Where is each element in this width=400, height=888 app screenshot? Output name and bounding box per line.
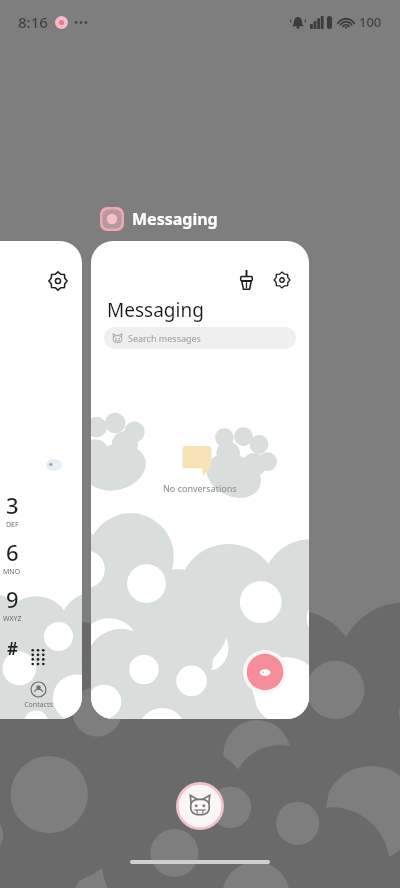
- staticText: 9: [6, 584, 19, 614]
- button[interactable]: Settings: [269, 267, 295, 293]
- staticText: 3: [6, 490, 19, 520]
- staticText: #: [7, 637, 18, 660]
- staticText: No conversations: [163, 482, 237, 494]
- staticText: MNO: [3, 567, 21, 577]
- button[interactable]: Keypad: [26, 645, 50, 669]
- button[interactable]: #: [0, 631, 82, 665]
- staticText: Messaging: [107, 297, 204, 323]
- button[interactable]: Settings: [0, 241, 82, 719]
- staticText: Search messages: [128, 332, 201, 344]
- staticText: WXYZ: [3, 614, 22, 624]
- button[interactable]: Contacts: [18, 681, 58, 710]
- button[interactable]: 3: [0, 490, 82, 537]
- staticText: Messaging: [132, 208, 218, 230]
- staticText: 6: [6, 537, 19, 567]
- button[interactable]: 9: [0, 584, 82, 631]
- staticText: DEF: [6, 520, 19, 530]
- button[interactable]: Messaging: [100, 207, 218, 231]
- staticText: Contacts: [24, 700, 53, 710]
- button[interactable]: Assistant: [176, 782, 224, 830]
- staticText: 8:16: [18, 12, 48, 32]
- button[interactable]: New conversation: [243, 650, 287, 694]
- staticText: 100: [359, 13, 382, 31]
- button[interactable]: Clean up: [233, 267, 259, 293]
- button[interactable]: 6: [0, 537, 82, 584]
- button[interactable]: Settings: [46, 269, 70, 293]
- button[interactable]: Search messages: [104, 327, 296, 349]
